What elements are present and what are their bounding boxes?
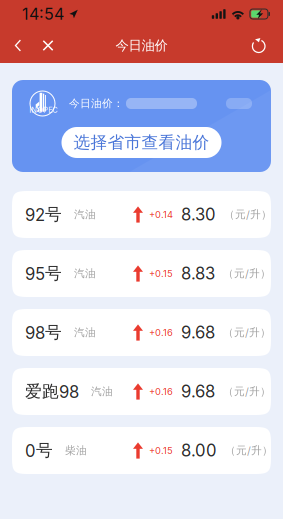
button[interactable]: 爱跑98	[12, 368, 271, 415]
staticText: +0.16	[149, 386, 173, 397]
staticText: 98号	[25, 322, 62, 343]
staticText: 今日油价：	[69, 97, 124, 110]
staticText: 8.30	[181, 204, 216, 225]
staticText: （元/升）	[223, 326, 271, 339]
button[interactable]: Refresh	[247, 28, 271, 62]
staticText: （元/升）	[224, 208, 272, 221]
staticText: 0号	[25, 440, 53, 461]
staticText: （元/升）	[223, 385, 271, 398]
button[interactable]: Back	[6, 28, 30, 62]
button[interactable]: 98号	[12, 309, 271, 356]
staticText: 9.68	[181, 381, 215, 402]
staticText: +0.16	[149, 327, 173, 338]
staticText: 95号	[25, 263, 62, 284]
staticText: 柴油	[65, 444, 87, 457]
staticText: 92号	[25, 204, 62, 225]
staticText: 8.00	[181, 440, 217, 461]
staticText: 汽油	[74, 267, 96, 280]
button[interactable]: Close	[36, 28, 60, 62]
staticText: +0.14	[149, 209, 173, 220]
staticText: 8.83	[181, 263, 215, 284]
staticText: 今日油价	[115, 37, 167, 54]
staticText: （元/升）	[225, 444, 273, 457]
button[interactable]: 95号	[12, 250, 271, 297]
staticText: 爱跑98	[25, 381, 79, 402]
staticText: 汽油	[91, 385, 113, 398]
staticText: 14:54	[22, 4, 64, 24]
button[interactable]: 0号	[12, 427, 271, 474]
staticText: 选择省市查看油价	[73, 132, 209, 153]
staticText: INOPEC	[29, 105, 57, 114]
button[interactable]: 选择省市查看油价	[61, 127, 221, 158]
staticText: 9.68	[181, 322, 215, 343]
staticText: +0.15	[149, 445, 173, 456]
staticText: 汽油	[74, 208, 96, 221]
button[interactable]: 92号	[12, 191, 271, 238]
staticText: +0.15	[149, 268, 173, 279]
staticText: 汽油	[74, 326, 96, 339]
staticText: （元/升）	[223, 267, 271, 280]
